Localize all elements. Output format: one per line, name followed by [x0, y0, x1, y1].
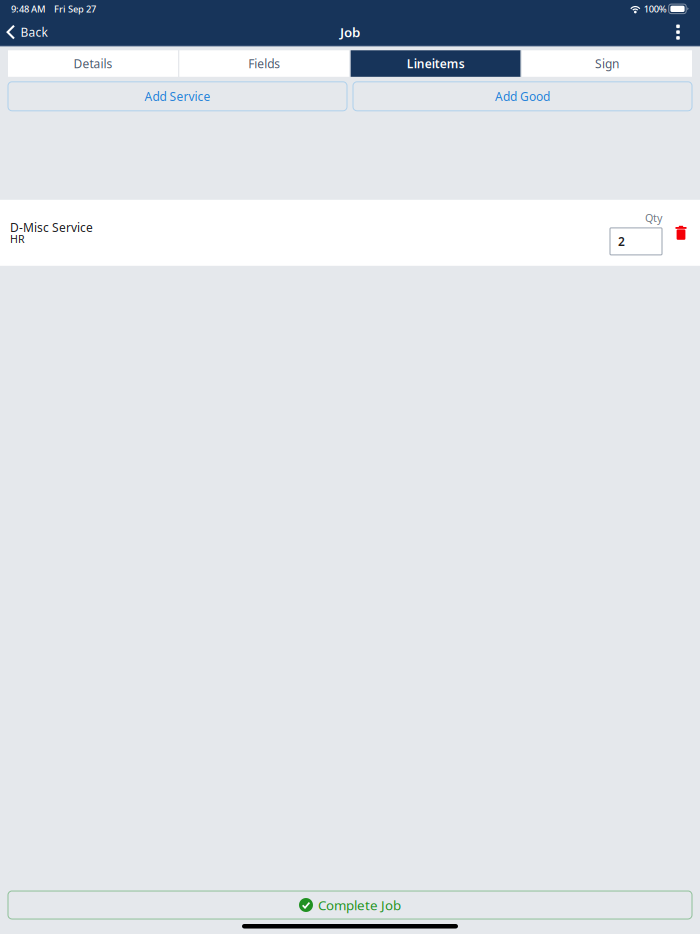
button[interactable]: Complete Job [8, 891, 692, 919]
staticText: HR [10, 232, 25, 246]
staticText: Sign [595, 56, 619, 71]
staticText: Back [20, 24, 47, 40]
button[interactable]: Fields [179, 50, 349, 77]
staticText: Complete Job [318, 896, 401, 914]
button[interactable]: More options [664, 19, 692, 46]
button[interactable]: Add Service [8, 82, 347, 111]
staticText: Add Service [144, 88, 210, 104]
button[interactable]: Delete line item [662, 211, 700, 255]
button[interactable]: Add Good [353, 82, 692, 111]
staticText: Lineitems [407, 56, 465, 71]
button[interactable]: Details [8, 50, 178, 77]
staticText: Fields [248, 56, 280, 71]
staticText: Job [340, 23, 360, 41]
staticText: Details [73, 56, 112, 71]
button[interactable]: Sign [522, 50, 692, 77]
staticText: 9:48 AM [11, 3, 46, 15]
staticText: Add Good [495, 88, 550, 104]
button[interactable]: Lineitems [351, 50, 521, 77]
staticText: D-Misc Service [10, 219, 93, 235]
button[interactable]: Back [0, 19, 55, 46]
staticText: Fri Sep 27 [54, 3, 96, 15]
staticText: 2 [618, 233, 625, 249]
staticText: 100% [644, 3, 667, 15]
staticText: Qty [645, 211, 662, 225]
